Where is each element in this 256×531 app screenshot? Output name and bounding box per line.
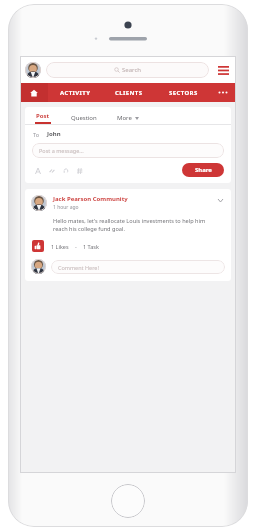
button[interactable]: Home [20,83,48,102]
button[interactable]: ACTIVITY [48,83,102,102]
staticText: Post a message... [39,147,84,154]
staticText: 1 Task [83,243,99,250]
button[interactable]: CLIENTS [102,83,156,102]
button[interactable]: Post a message... [32,143,224,158]
button[interactable]: Tool A [33,166,42,175]
staticText: - [75,243,77,250]
staticText: To [33,131,40,138]
button[interactable]: SECTORS [156,83,210,102]
button[interactable]: Menu [215,62,231,78]
staticText: Hello mates, let's reallocate Louis inve… [53,217,221,233]
staticText: Post [36,112,50,120]
button[interactable]: More options [210,83,236,102]
staticText: SECTORS [169,89,198,97]
button[interactable]: Tool clip [61,166,70,175]
button[interactable]: Comment Here! [51,260,225,274]
button[interactable]: More [114,112,142,124]
staticText: 1 hour ago [53,204,79,211]
staticText: John [47,130,61,138]
button[interactable]: Like [32,240,44,252]
staticText: Comment Here! [58,264,99,271]
button[interactable]: Search [46,62,209,78]
staticText: More [117,114,132,122]
button[interactable]: Post [32,112,54,124]
staticText: Jack Pearson Community [53,195,128,203]
staticText: Question [71,114,97,122]
staticText: Share [195,166,212,174]
button[interactable]: Question [68,112,100,124]
button[interactable]: Tool link [47,166,56,175]
staticText: Search [122,66,141,74]
staticText: CLIENTS [115,89,143,97]
button[interactable]: Home button [111,484,145,518]
staticText: ACTIVITY [60,89,91,97]
button[interactable]: Share [182,163,224,177]
button[interactable]: Tool # [75,166,84,175]
button[interactable]: Expand post [215,195,225,205]
staticText: 1 Likes [51,243,69,250]
